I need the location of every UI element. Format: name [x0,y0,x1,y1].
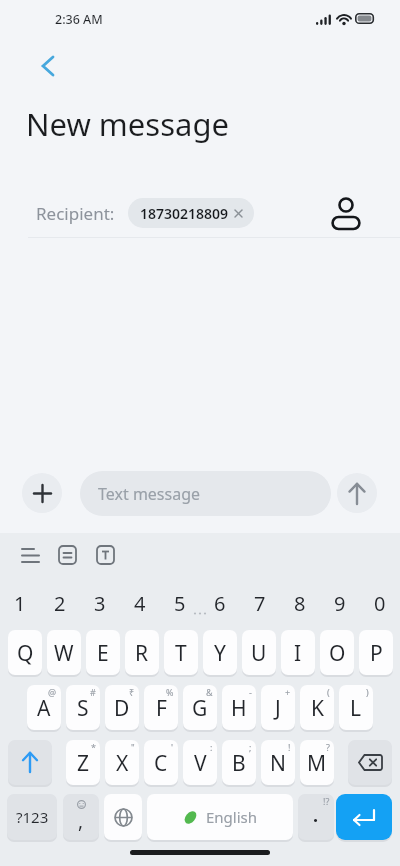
button[interactable] [348,740,392,785]
button[interactable] [326,193,366,233]
button[interactable]: 9 [320,586,360,620]
staticText: E [97,639,109,668]
button[interactable]: L [339,685,373,730]
button[interactable]: 5 [160,586,200,620]
button[interactable]: . [298,794,334,840]
staticText: P [370,639,383,668]
staticText: !? [323,795,330,807]
button[interactable]: 0 [360,586,400,620]
staticText: & [206,686,213,698]
button[interactable]: 2 [40,586,80,620]
button[interactable]: , [63,794,99,840]
staticText: X [116,749,129,778]
staticText: 2:36 AM [55,11,103,28]
staticText: 6 [214,590,226,617]
button[interactable]: J [261,685,295,730]
staticText: * [91,741,96,753]
staticText: . [313,803,319,828]
staticText: C [154,749,168,778]
button[interactable]: X [105,740,139,785]
button[interactable]: C [144,740,178,785]
button[interactable]: Text message [80,471,331,516]
staticText: % [166,686,174,698]
button[interactable] [104,794,142,840]
button[interactable]: H [222,685,256,730]
staticText: New message [26,103,229,145]
button[interactable]: T [164,630,198,675]
staticText: F [156,694,167,723]
button[interactable]: F [144,685,178,730]
staticText: R [135,639,149,668]
button[interactable]: ?123 [7,794,57,840]
staticText: 8 [294,590,306,617]
button[interactable] [336,794,392,840]
staticText: Y [214,639,226,668]
staticText: " [131,741,135,753]
button[interactable] [12,537,48,573]
button[interactable]: 3 [80,586,120,620]
staticText: 2 [54,590,66,617]
button[interactable]: Z [66,740,100,785]
button[interactable]: G [183,685,217,730]
button[interactable]: 6 [200,586,240,620]
staticText: A [37,694,51,723]
staticText: H [231,694,247,723]
staticText: V [194,749,207,778]
staticText: L [350,694,362,723]
staticText: 18730218809 [140,204,229,223]
button[interactable] [87,537,123,573]
staticText: 3 [94,590,106,617]
button[interactable]: U [242,630,276,675]
button[interactable]: 18730218809 [128,198,254,228]
staticText: U [251,639,267,668]
staticText: ₹ [129,686,135,698]
staticText: Z [77,749,90,778]
staticText: ) [366,686,369,698]
button[interactable]: M [300,740,334,785]
button[interactable]: D [105,685,139,730]
button[interactable]: Y [203,630,237,675]
staticText: J [275,694,281,723]
staticText: N [270,749,286,778]
button[interactable] [22,473,62,513]
staticText: 9 [334,590,346,617]
staticText: 7 [254,590,266,617]
button[interactable]: 4 [120,586,160,620]
staticText: English [206,807,258,827]
button[interactable] [49,537,85,573]
button[interactable]: B [222,740,256,785]
button[interactable]: 8 [280,586,320,620]
staticText: # [90,686,96,698]
button[interactable]: 7 [240,586,280,620]
button[interactable] [337,473,377,513]
staticText: ? [326,741,330,753]
button[interactable]: A [27,685,61,730]
button[interactable]: R [125,630,159,675]
staticText: Text message [98,483,201,505]
button[interactable]: N [261,740,295,785]
button[interactable]: W [47,630,81,675]
button[interactable]: S [66,685,100,730]
button[interactable]: O [320,630,354,675]
staticText: T [175,639,187,668]
button[interactable]: K [300,685,334,730]
staticText: + [285,686,291,698]
staticText: I [294,639,302,668]
staticText: M [307,749,327,778]
button[interactable]: English [147,794,293,840]
staticText: G [192,694,208,723]
staticText: , [78,808,84,834]
staticText: : [210,741,213,753]
button[interactable]: P [359,630,393,675]
button[interactable]: V [183,740,217,785]
staticText: 0 [374,590,386,617]
staticText: ! [288,741,291,753]
button[interactable]: Q [8,630,42,675]
button[interactable] [8,740,52,785]
staticText: O [329,639,346,668]
staticText: W [54,639,74,668]
button[interactable] [30,48,66,84]
button[interactable]: I [281,630,315,675]
button[interactable]: 1 [0,586,40,620]
button[interactable]: E [86,630,120,675]
